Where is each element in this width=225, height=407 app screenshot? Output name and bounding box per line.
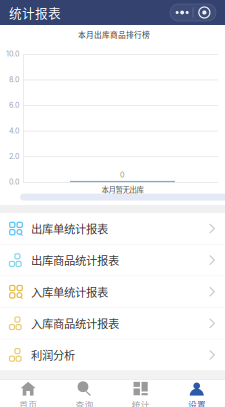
staticText: 4.0	[9, 126, 20, 135]
staticText: 出库商品统计报表	[31, 252, 119, 268]
staticText: 出库单统计报表	[31, 220, 108, 237]
staticText: 统计	[132, 398, 150, 407]
staticText: 入库单统计报表	[31, 283, 108, 300]
staticText: 本月暂无出库	[101, 184, 143, 195]
staticText: 利润分析	[31, 347, 75, 363]
staticText: 入库商品统计报表	[31, 315, 119, 331]
button[interactable]: More	[171, 4, 193, 21]
button[interactable]: 出库商品统计报表	[0, 245, 225, 276]
button[interactable]: Close	[193, 4, 215, 21]
button[interactable]: 利润分析	[0, 339, 225, 371]
button[interactable]: 入库单统计报表	[0, 276, 225, 308]
button[interactable]: 设置	[169, 380, 225, 407]
button[interactable]: 入库商品统计报表	[0, 308, 225, 339]
staticText: 10.0	[6, 50, 20, 58]
staticText: 统计报表	[9, 3, 61, 22]
button[interactable]: 查询	[56, 380, 112, 407]
staticText: 6.0	[9, 101, 20, 109]
staticText: 本月出库商品排行榜	[78, 29, 150, 40]
staticText: 首页	[19, 398, 37, 407]
staticText: 查询	[75, 398, 93, 407]
staticText: 设置	[188, 398, 206, 407]
staticText: 0.0	[9, 178, 20, 186]
button[interactable]: 出库单统计报表	[0, 213, 225, 245]
staticText: 0	[120, 171, 125, 179]
button[interactable]: 统计	[112, 380, 169, 407]
staticText: 2.0	[9, 152, 20, 161]
staticText: 8.0	[9, 75, 20, 84]
button[interactable]: 首页	[0, 380, 56, 407]
